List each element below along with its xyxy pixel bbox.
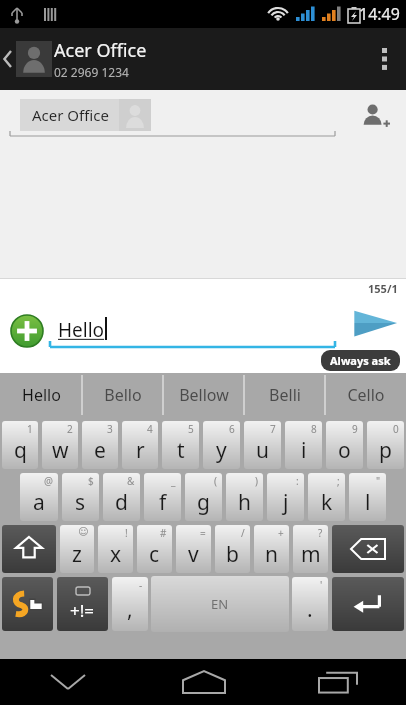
staticText: x	[110, 540, 122, 569]
staticText: @	[44, 474, 53, 488]
staticText: EN	[211, 595, 229, 613]
staticText: .	[307, 595, 313, 624]
staticText: w	[52, 436, 69, 465]
button[interactable]: 1	[2, 421, 38, 469]
button[interactable]: Hello	[0, 373, 82, 417]
button[interactable]: Back	[0, 659, 136, 705]
staticText: s	[75, 488, 86, 517]
staticText: m	[301, 540, 321, 569]
staticText: 0	[393, 422, 399, 436]
staticText: e	[94, 436, 106, 465]
staticText: v	[188, 540, 199, 569]
button[interactable]: Back	[0, 28, 54, 90]
staticText: 9	[352, 422, 358, 436]
staticText: 2	[67, 422, 73, 436]
button[interactable]: &	[103, 473, 140, 521]
button[interactable]: Add attachment	[8, 312, 46, 350]
button[interactable]: Home	[136, 659, 271, 705]
staticText: a	[33, 488, 45, 517]
button[interactable]: +	[254, 525, 289, 573]
button[interactable]: _	[144, 473, 181, 521]
button[interactable]: Symbols	[57, 577, 108, 631]
staticText: -	[139, 578, 143, 592]
button[interactable]: ;	[308, 473, 345, 521]
staticText: b	[226, 540, 239, 569]
button[interactable]: Bellow	[163, 373, 244, 417]
button[interactable]: 8	[285, 421, 322, 469]
staticText: 6	[229, 422, 235, 436]
button[interactable]: 0	[367, 421, 404, 469]
staticText: h	[238, 488, 251, 517]
button[interactable]: Recent apps	[271, 659, 406, 705]
staticText: Bello	[104, 384, 142, 406]
staticText: 8	[311, 422, 317, 436]
button[interactable]: Hello	[50, 305, 335, 355]
staticText: $	[88, 474, 94, 488]
staticText: n	[265, 540, 278, 569]
button[interactable]: )	[226, 473, 263, 521]
button[interactable]: More options	[362, 28, 406, 90]
button[interactable]: 5	[162, 421, 199, 469]
button[interactable]: 4	[122, 421, 158, 469]
staticText: )	[255, 474, 258, 488]
staticText: d	[115, 488, 128, 517]
staticText: 14:49	[359, 3, 400, 25]
staticText: i	[301, 436, 307, 465]
button[interactable]: Shift	[2, 525, 56, 573]
button[interactable]: /	[215, 525, 250, 573]
button[interactable]: Send	[348, 303, 402, 343]
button[interactable]: '	[292, 577, 328, 631]
button[interactable]: Bello	[82, 373, 163, 417]
button[interactable]: (	[185, 473, 222, 521]
button[interactable]: EN	[151, 576, 289, 632]
staticText: 7	[270, 422, 276, 436]
staticText: '	[320, 578, 323, 592]
button[interactable]: 9	[326, 421, 363, 469]
staticText: +!=	[70, 599, 95, 622]
button[interactable]: ☺	[60, 525, 94, 573]
staticText: 3	[107, 422, 113, 436]
staticText: (	[214, 474, 217, 488]
staticText: Belli	[269, 384, 301, 406]
button[interactable]: 6	[203, 421, 240, 469]
button[interactable]: Enter	[332, 577, 404, 631]
button[interactable]: "	[349, 473, 386, 521]
staticText: q	[14, 436, 27, 465]
staticText: 4	[147, 422, 153, 436]
button[interactable]: Handwriting	[2, 577, 53, 631]
staticText: Acer Office	[54, 38, 147, 63]
button[interactable]: !	[98, 525, 133, 573]
button[interactable]: 7	[244, 421, 281, 469]
button[interactable]: Cello	[325, 373, 406, 417]
button[interactable]: =	[176, 525, 211, 573]
staticText: z	[72, 540, 82, 569]
button[interactable]: Always ask	[330, 353, 391, 368]
staticText: 02 2969 1234	[54, 64, 129, 80]
staticText: j	[283, 488, 289, 517]
staticText: 155/1	[368, 281, 398, 296]
button[interactable]: -	[112, 577, 148, 631]
staticText: g	[197, 488, 210, 517]
button[interactable]: Backspace	[332, 525, 404, 573]
staticText: "	[376, 474, 381, 488]
staticText: Acer Office	[32, 105, 109, 125]
staticText: p	[379, 436, 392, 465]
button[interactable]: Belli	[244, 373, 325, 417]
staticText: _	[171, 474, 176, 488]
staticText: :	[296, 474, 299, 488]
staticText: l	[365, 488, 371, 517]
button[interactable]: Add recipient	[352, 94, 398, 140]
staticText: y	[216, 436, 227, 465]
button[interactable]: ?	[293, 525, 328, 573]
button[interactable]: $	[62, 473, 99, 521]
staticText: 5	[188, 422, 194, 436]
button[interactable]: 2	[42, 421, 78, 469]
button[interactable]: Acer Office	[20, 99, 151, 131]
button[interactable]: @	[20, 473, 58, 521]
staticText: Hello	[22, 384, 61, 406]
staticText: Always ask	[330, 353, 391, 368]
staticText: 1	[27, 422, 33, 436]
button[interactable]: 3	[82, 421, 118, 469]
button[interactable]: :	[267, 473, 304, 521]
button[interactable]: #	[137, 525, 172, 573]
